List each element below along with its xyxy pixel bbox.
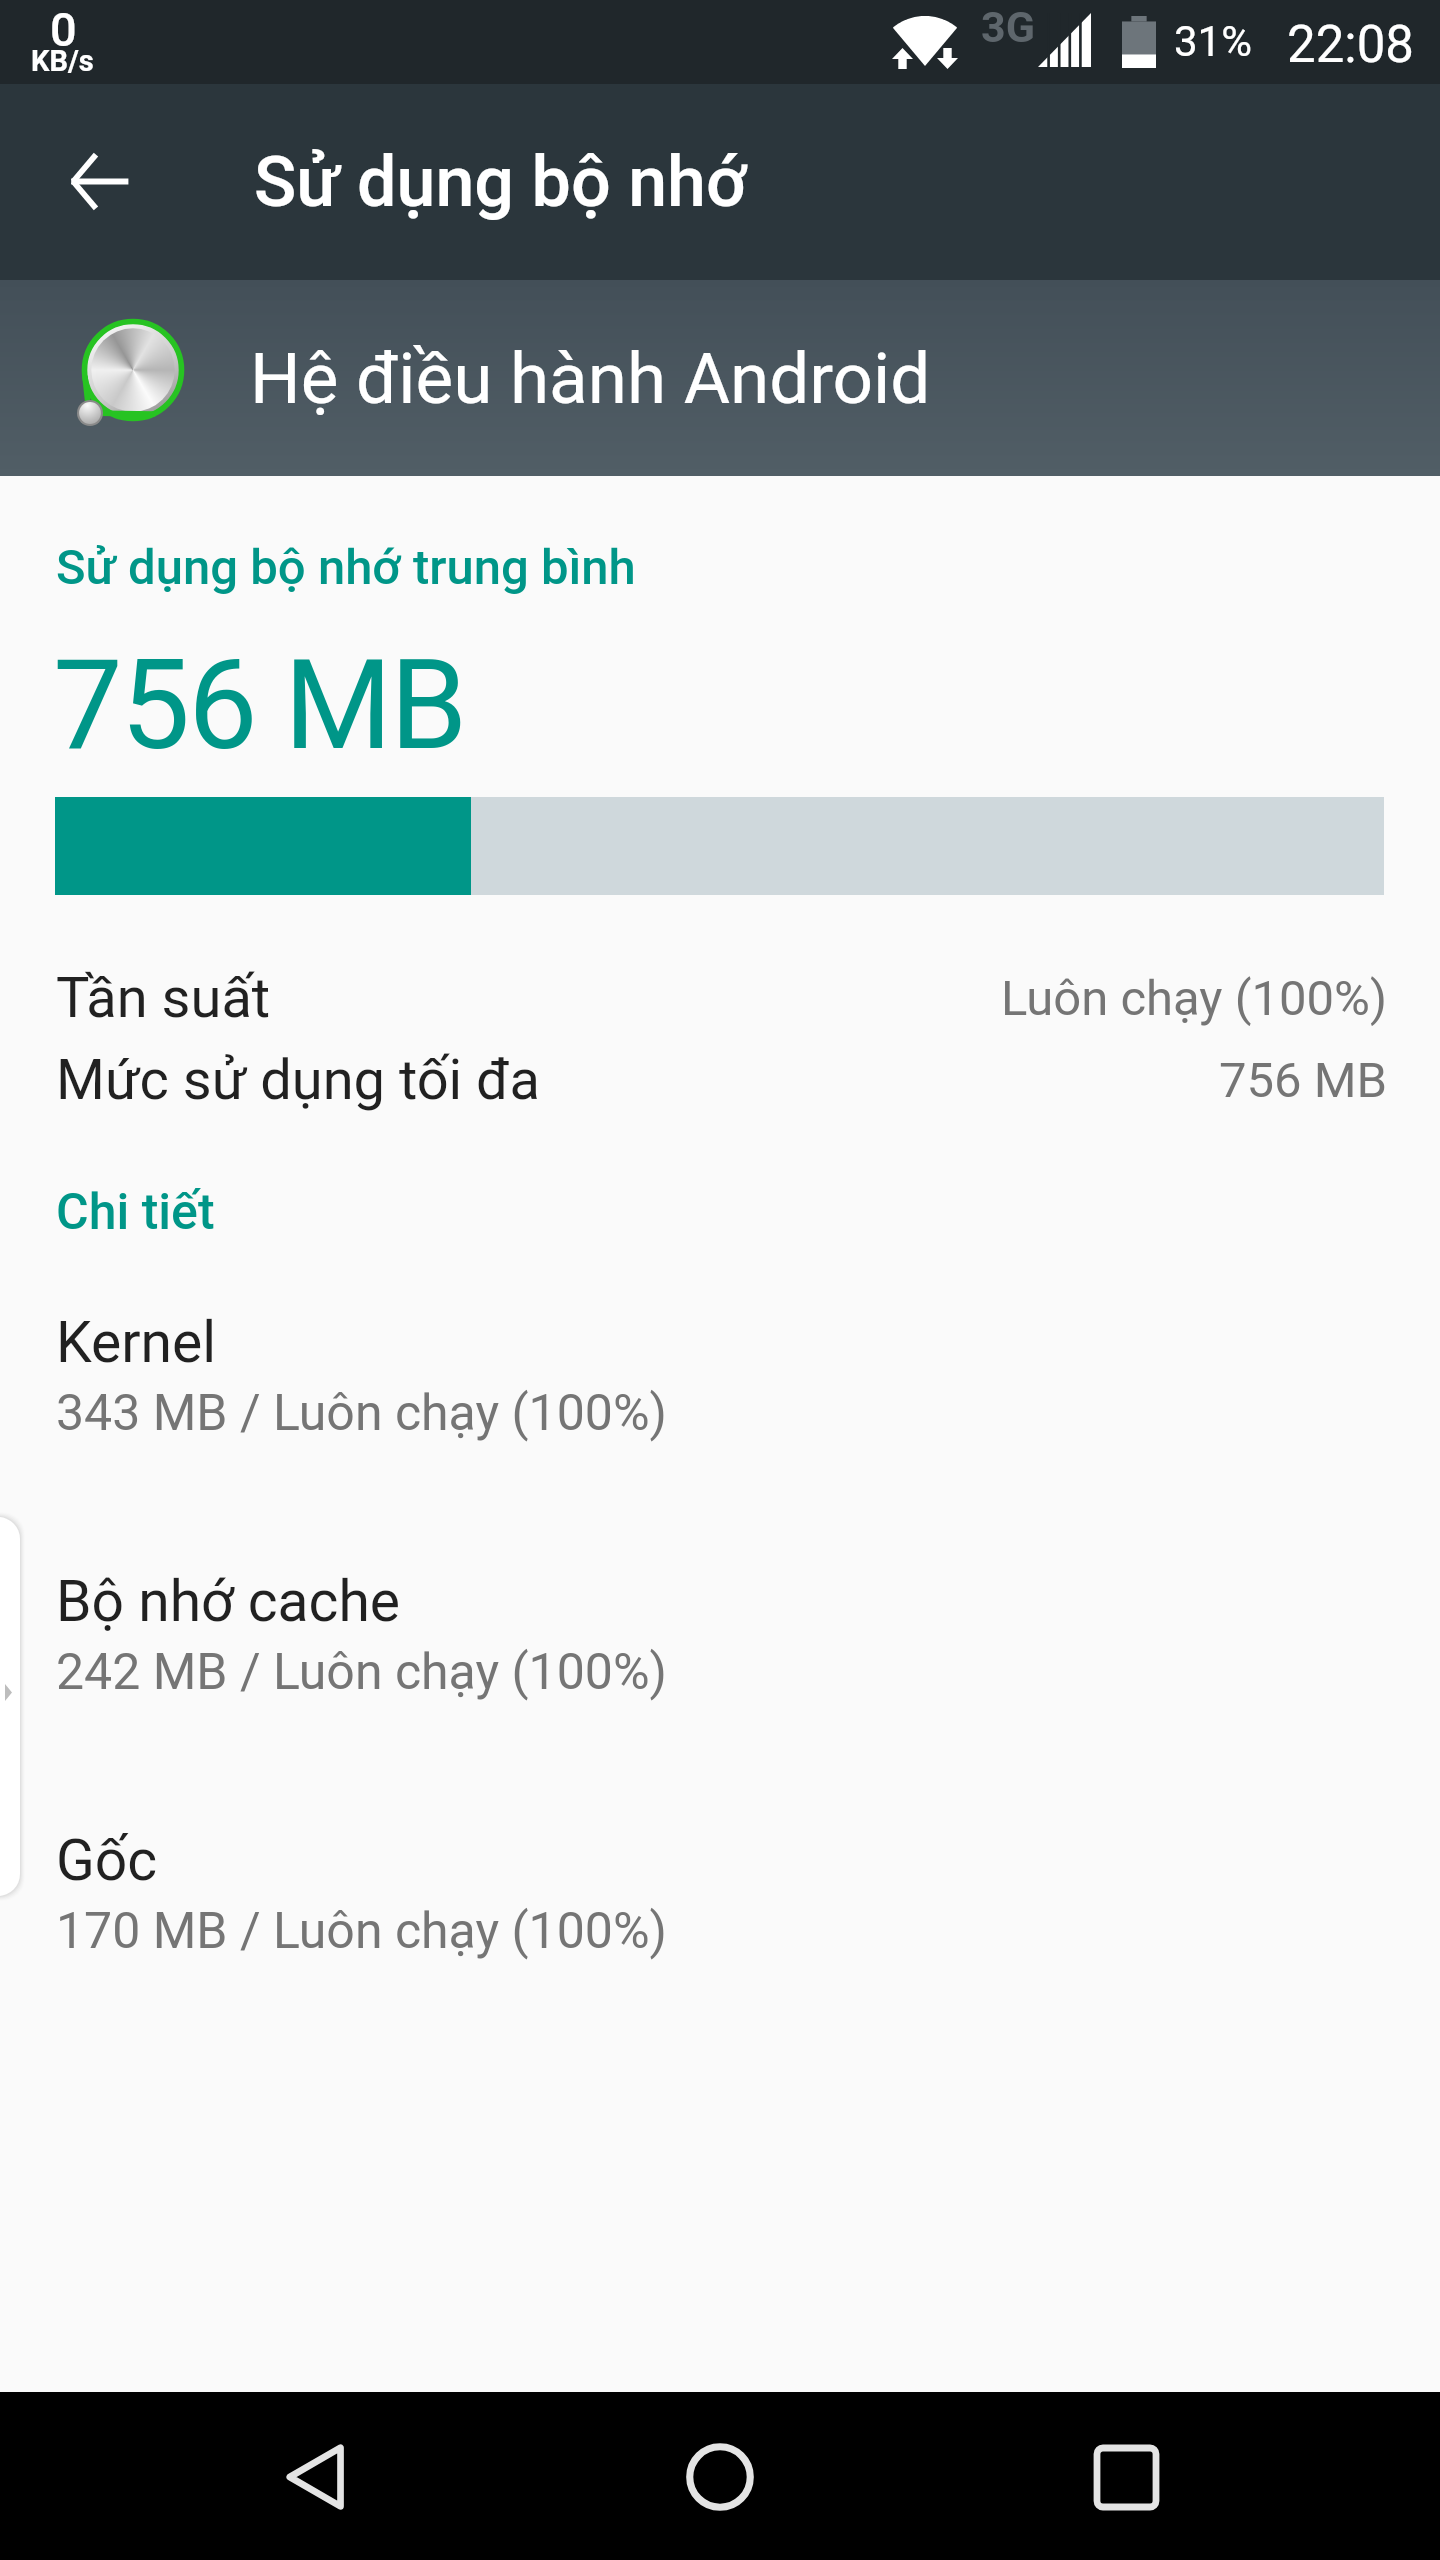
staticText: Mức sử dụng tối đa <box>56 1047 541 1113</box>
button[interactable]: Bộ nhớ cache <box>0 1568 1440 1748</box>
staticText: Sử dụng bộ nhớ <box>254 141 747 223</box>
staticText: Hệ điều hành Android <box>250 337 931 420</box>
button[interactable]: Mức sử dụng tối đa <box>0 1044 1440 1128</box>
staticText: Luôn chạy (100%) <box>0 970 1387 1027</box>
button[interactable]: Recent apps <box>1006 2392 1246 2560</box>
staticText: Sử dụng bộ nhớ trung bình <box>56 539 636 596</box>
staticText: 0 <box>50 2 77 57</box>
button[interactable]: Navigate up <box>39 121 159 241</box>
button[interactable]: Back <box>195 2392 435 2560</box>
staticText: Kernel <box>56 1309 217 1376</box>
staticText: 756 MB <box>0 1052 1387 1109</box>
staticText: 343 MB / Luôn chạy (100%) <box>56 1384 667 1443</box>
button[interactable]: Home <box>600 2392 840 2560</box>
button[interactable]: Kernel <box>0 1309 1440 1489</box>
staticText: Bộ nhớ cache <box>56 1568 401 1635</box>
staticText: 22:08 <box>1287 15 1415 75</box>
button[interactable]: Gốc <box>0 1827 1440 2007</box>
staticText: 242 MB / Luôn chạy (100%) <box>56 1643 667 1702</box>
staticText: 31% <box>1174 17 1252 66</box>
button[interactable]: Edge panel handle <box>0 1517 20 1896</box>
staticText: Chi tiết <box>56 1183 215 1242</box>
staticText: Gốc <box>56 1827 158 1894</box>
staticText: 3G <box>981 2 1035 52</box>
staticText: 170 MB / Luôn chạy (100%) <box>56 1902 667 1961</box>
staticText: Tần suất <box>56 965 271 1031</box>
staticText: KB/s <box>31 44 94 78</box>
button[interactable]: Tần suất <box>0 962 1440 1046</box>
staticText: 756 MB <box>53 633 466 778</box>
